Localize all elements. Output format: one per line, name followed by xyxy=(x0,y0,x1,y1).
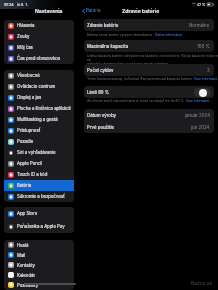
staticText: Multitasking a gestá xyxy=(17,117,58,122)
staticText: jún 2024 xyxy=(191,125,210,130)
staticText: Viac informácií... xyxy=(186,99,212,103)
staticText: Bazos.sk xyxy=(191,280,213,286)
button[interactable]: Zvuky xyxy=(4,31,74,42)
staticText: Kontakty xyxy=(17,263,35,268)
button[interactable]: Maximálna kapacita xyxy=(84,40,214,52)
staticText: Peňaženka a Apple Pay xyxy=(17,224,65,229)
staticText: Prvé použitie xyxy=(87,125,115,130)
button[interactable]: Dátum výroby xyxy=(84,109,214,121)
staticText: Pozadie xyxy=(17,139,34,144)
button[interactable]: Môj čas xyxy=(4,42,74,53)
button[interactable]: Prístupnosť xyxy=(4,125,74,136)
staticText: Môj čas xyxy=(17,45,33,50)
button[interactable]: Čas pred obrazovkou xyxy=(4,53,74,64)
staticText: Všeobecné xyxy=(17,73,40,78)
button[interactable]: Kontakty xyxy=(4,260,74,270)
staticText: Poznámky xyxy=(17,283,39,288)
button[interactable]: Kalendár xyxy=(4,270,74,280)
staticText: Plocha a Knižnica aplikácií xyxy=(17,106,71,111)
button[interactable]: Hlásenia xyxy=(4,20,74,31)
button[interactable]: Prvé použitie xyxy=(84,121,214,133)
staticText: január 2024 xyxy=(185,113,210,118)
staticText: Tento hodnota ukazuje, koľkokrát iPad sp… xyxy=(87,77,193,81)
button[interactable]: Peňaženka a Apple Pay xyxy=(4,220,74,233)
staticText: Displej a jas xyxy=(17,95,42,100)
staticText: Batéria xyxy=(17,183,32,188)
staticText: Udáva kapacitu batérie vzhľadom na kapac… xyxy=(87,54,218,66)
staticText: Zdravie batérie xyxy=(122,8,160,14)
staticText: 3 xyxy=(207,68,210,73)
staticText: 100 % xyxy=(197,44,210,49)
staticText: Čas pred obrazovkou xyxy=(17,56,61,61)
button[interactable]: Touch ID a kód xyxy=(4,169,74,180)
staticText: Zdravie batérie xyxy=(87,23,119,28)
button[interactable]: Heslá xyxy=(4,240,74,250)
staticText: Nastavenia xyxy=(35,8,63,14)
button[interactable]: Súkromie a bezpečnosť xyxy=(4,191,74,202)
button[interactable]: Plocha a Knižnica aplikácií xyxy=(4,103,74,114)
staticText: Apple Pencil xyxy=(17,161,43,166)
staticText: Siri a vyhľadávanie xyxy=(17,150,56,155)
button[interactable]: Poznámky xyxy=(4,280,74,290)
button[interactable]: Multitasking a gestá xyxy=(4,114,74,125)
button[interactable]: Batéria xyxy=(82,8,101,13)
staticText: 47 % xyxy=(197,3,206,7)
staticText: Batéria xyxy=(86,8,101,13)
button[interactable]: Displej a jas xyxy=(4,92,74,103)
button[interactable]: Siri a vyhľadávanie xyxy=(4,147,74,158)
button[interactable]: Zdravie batérie xyxy=(84,19,214,31)
staticText: Súkromie a bezpečnosť xyxy=(17,194,65,199)
staticText: Prístupnosť xyxy=(17,128,41,133)
staticText: Limit 80 % xyxy=(87,90,110,95)
button[interactable]: Batéria xyxy=(4,180,74,191)
button[interactable]: Ovládacie centrum xyxy=(4,81,74,92)
staticText: App Store xyxy=(17,211,38,216)
staticText: Touch ID a kód xyxy=(17,172,48,177)
button[interactable]: Limit 80 % xyxy=(194,88,211,97)
staticText: Viac informácií... xyxy=(194,77,218,81)
staticText: Maximálna kapacita xyxy=(87,44,129,49)
staticText: Mail xyxy=(17,253,26,258)
staticText: Zvuky xyxy=(17,34,30,39)
staticText: Ak chcete znížiť starnutie batérie, bude… xyxy=(87,99,185,103)
staticText: št 9. 1. xyxy=(17,3,28,7)
staticText: Ďalšie informácie... xyxy=(155,33,185,37)
staticText: Hlásenia xyxy=(17,23,35,28)
button[interactable]: App Store xyxy=(4,207,74,220)
staticText: Kalendár xyxy=(17,273,36,278)
button[interactable]: Apple Pencil xyxy=(4,158,74,169)
staticText: Dátum výroby xyxy=(87,113,116,118)
staticText: Batéria nemá žiadne výrazné obmedzenia. xyxy=(87,33,154,37)
button[interactable]: Pozadie xyxy=(4,136,74,147)
button[interactable]: Mail xyxy=(4,250,74,260)
staticText: Ovládacie centrum xyxy=(17,84,56,89)
staticText: Počet cyklov xyxy=(87,68,114,73)
staticText: Heslá xyxy=(17,243,29,248)
button[interactable]: Počet cyklov xyxy=(84,64,214,76)
button[interactable]: Všeobecné xyxy=(4,70,74,81)
staticText: Normálne xyxy=(189,23,210,28)
staticText: 10:34 xyxy=(4,3,14,7)
